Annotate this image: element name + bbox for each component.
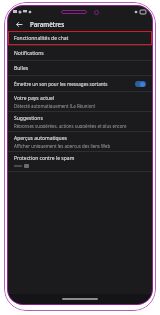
staticText: Protection contre le spam xyxy=(14,155,75,162)
button[interactable]: Retour xyxy=(13,18,25,30)
staticText: Bulles xyxy=(14,65,29,72)
staticText: Aperçus automatiques xyxy=(14,135,67,142)
button[interactable]: Activer le son xyxy=(135,81,146,87)
button[interactable]: Bulles xyxy=(8,61,152,75)
button[interactable]: Notifications xyxy=(8,46,152,60)
staticText: Paramètres xyxy=(30,20,65,28)
button[interactable]: Votre pays actuel xyxy=(8,92,152,111)
button[interactable]: Émettre un son pour les messages sortant… xyxy=(8,76,152,91)
staticText: Réponses suggérées, actions suggérées et… xyxy=(14,123,127,128)
staticText: Émettre un son pour les messages sortant… xyxy=(14,81,108,87)
button[interactable]: Aperçus automatiques xyxy=(8,132,152,151)
button[interactable]: Suggestions xyxy=(8,112,152,131)
button[interactable]: Fonctionnalités de chat xyxy=(8,31,152,45)
button[interactable]: Protection contre le spam xyxy=(8,152,152,171)
staticText: Suggestions xyxy=(14,115,43,122)
staticText: Fonctionnalités de chat xyxy=(14,35,69,42)
staticText: Détecté automatiquement (La Réunion) xyxy=(14,103,96,108)
staticText: Afficher uniquement les aperçus des lien… xyxy=(14,143,111,148)
staticText: Notifications xyxy=(14,50,44,57)
staticText: Votre pays actuel xyxy=(14,95,55,102)
